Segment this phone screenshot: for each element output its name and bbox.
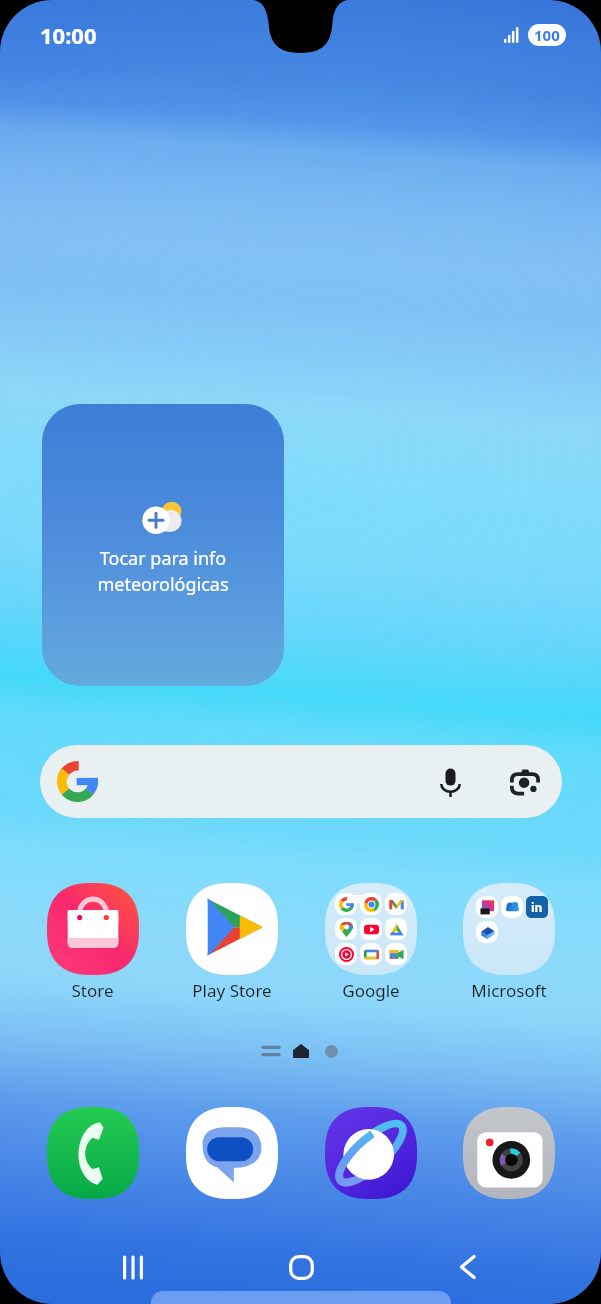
button[interactable]: Google Lens	[496, 753, 554, 811]
button[interactable]: Back	[434, 1233, 502, 1301]
staticText: Play Store	[192, 979, 272, 1002]
button[interactable]: Internet	[301, 1107, 440, 1199]
button[interactable]: Google	[301, 883, 440, 1002]
button[interactable]: Home	[267, 1233, 335, 1301]
button[interactable]: Tocar para info meteorológicas	[42, 404, 284, 686]
staticText: Tocar para info meteorológicas	[97, 546, 229, 597]
button[interactable]: Store	[23, 883, 162, 1002]
button[interactable]: Play Store	[162, 883, 301, 1002]
staticText: 100	[534, 25, 560, 45]
staticText: Store	[71, 979, 114, 1002]
button[interactable]: Recent apps	[99, 1233, 167, 1301]
button[interactable]: Home screen page	[286, 1036, 316, 1066]
button[interactable]: Voice search	[421, 753, 479, 811]
button[interactable]: App list page	[256, 1036, 286, 1066]
button[interactable]: in	[440, 883, 578, 1002]
button[interactable]: Voice search	[40, 745, 562, 818]
button[interactable]: Messages	[162, 1107, 301, 1199]
button[interactable]: Camera	[440, 1107, 578, 1199]
button[interactable]: Second page	[316, 1036, 346, 1066]
staticText: in	[531, 899, 543, 915]
staticText: 10:00	[40, 20, 97, 50]
button[interactable]: Phone	[23, 1107, 162, 1199]
staticText: Microsoft	[471, 979, 547, 1002]
staticText: Google	[342, 979, 400, 1002]
